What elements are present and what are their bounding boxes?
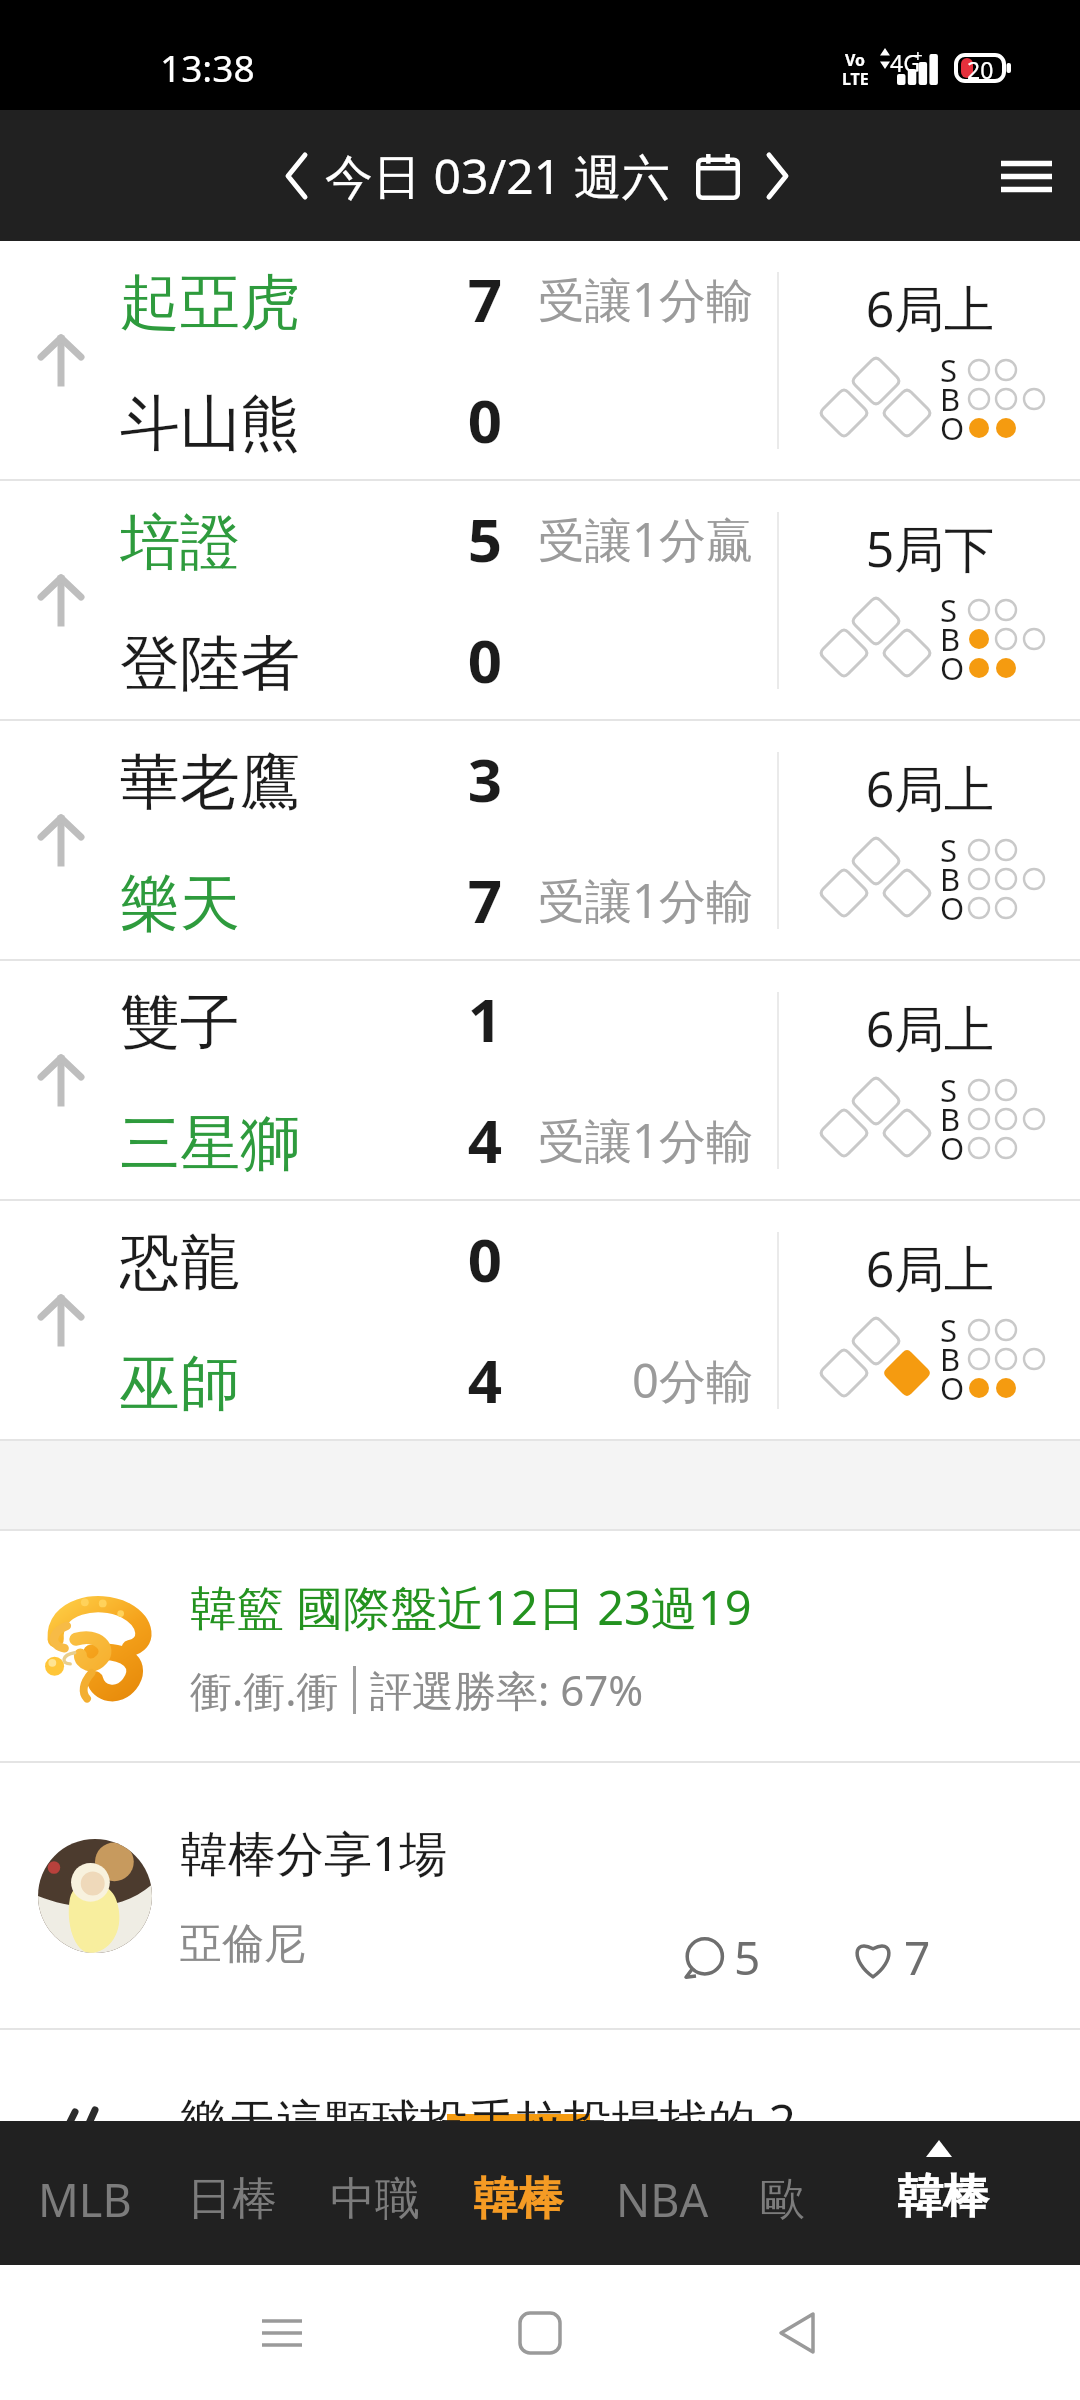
staticText: 韓籃 國際盤近12日 23過19	[190, 1575, 752, 1639]
button[interactable]: 韓棒	[448, 2121, 588, 2265]
button[interactable]: Home	[470, 2265, 610, 2400]
staticText: S	[940, 1309, 958, 1351]
staticText: 4	[440, 1339, 530, 1407]
staticText: 中職	[330, 2171, 420, 2228]
staticText: S	[940, 349, 958, 391]
button[interactable]: 培證	[0, 481, 1080, 719]
staticText: 今日 03/21 週六	[325, 143, 670, 209]
staticText: 歐	[760, 2171, 805, 2228]
staticText: 5局下	[810, 514, 1050, 582]
staticText: 0	[440, 619, 530, 687]
button[interactable]: 韓棒分享1場	[0, 1763, 1080, 2028]
staticText: O	[940, 647, 965, 689]
button[interactable]: NBA	[592, 2121, 732, 2265]
staticText: 斗山熊	[120, 386, 300, 454]
button[interactable]: Like	[850, 1926, 931, 1989]
staticText: 韓棒	[473, 2171, 563, 2228]
staticText: 樂天這顆球投手拉投場找的 2	[180, 2088, 796, 2154]
staticText: 6局上	[810, 994, 1050, 1062]
staticText: B	[940, 378, 961, 420]
staticText: O	[940, 1367, 965, 1409]
staticText: S	[940, 589, 958, 631]
button[interactable]: 日棒	[162, 2121, 302, 2265]
staticText: LTE	[842, 68, 869, 90]
staticText: 5	[734, 1926, 761, 1989]
staticText: O	[940, 1127, 965, 1169]
staticText: 日棒	[187, 2171, 277, 2228]
button[interactable]: MLB	[15, 2121, 155, 2265]
staticText: +	[913, 44, 923, 67]
staticText: 登陸者	[120, 626, 300, 694]
staticText: 起亞虎	[120, 265, 300, 333]
staticText: 4G	[890, 47, 920, 78]
staticText: B	[940, 1338, 961, 1380]
staticText: 受讓1分輸	[0, 1108, 753, 1172]
staticText: B	[940, 858, 961, 900]
button[interactable]: 樂天這顆球投手拉投場找的 2	[0, 2030, 1080, 2290]
button[interactable]: 起亞虎	[0, 241, 1080, 479]
staticText: 0	[440, 1218, 530, 1286]
staticText: 5	[440, 498, 530, 566]
staticText: 受讓1分輸	[0, 868, 753, 932]
button[interactable]: 華老鷹	[0, 721, 1080, 959]
staticText: Vo	[845, 49, 866, 71]
staticText: 三星獅	[120, 1106, 300, 1174]
staticText: 巫師	[120, 1346, 240, 1414]
staticText: 衝.衝.衝	[190, 1661, 339, 1718]
button[interactable]: 韓棒	[828, 2121, 1048, 2265]
staticText: 韓棒	[897, 2168, 989, 2226]
staticText: 0	[440, 379, 530, 447]
button[interactable]: Recents	[212, 2265, 352, 2400]
staticText: 1	[440, 978, 530, 1046]
staticText: 13:38	[160, 42, 255, 92]
staticText: 7	[440, 258, 530, 326]
staticText: 亞倫尼	[180, 1918, 306, 1971]
staticText: 0分輸	[0, 1348, 753, 1412]
staticText: B	[940, 1098, 961, 1140]
button[interactable]: 歐	[712, 2121, 852, 2265]
staticText: 4	[440, 1099, 530, 1167]
staticText: S	[940, 829, 958, 871]
staticText: 7	[904, 1926, 931, 1989]
staticText: 樂天	[120, 866, 240, 934]
staticText: NBA	[616, 2169, 709, 2230]
staticText: MLB	[38, 2169, 132, 2230]
button[interactable]: 今日 03/21 週六	[278, 110, 796, 241]
staticText: 雙子	[120, 985, 240, 1053]
staticText: 20	[967, 54, 994, 85]
staticText: 恐龍	[120, 1225, 240, 1293]
staticText: O	[940, 887, 965, 929]
button[interactable]: 中職	[305, 2121, 445, 2265]
staticText: 受讓1分輸	[0, 267, 753, 331]
button[interactable]: 雙子	[0, 961, 1080, 1199]
button[interactable]: Menu	[986, 136, 1066, 216]
staticText: 華老鷹	[120, 745, 300, 813]
button[interactable]: Back	[727, 2265, 867, 2400]
staticText: B	[940, 618, 961, 660]
staticText: 7	[440, 859, 530, 927]
staticText: 6局上	[810, 754, 1050, 822]
staticText: S	[940, 1069, 958, 1111]
staticText: 韓棒分享1場	[180, 1820, 448, 1886]
staticText: 6局上	[810, 1234, 1050, 1302]
staticText: 6局上	[810, 274, 1050, 342]
staticText: O	[940, 407, 965, 449]
button[interactable]: 恐龍	[0, 1201, 1080, 1439]
staticText: 受讓1分贏	[0, 507, 753, 571]
staticText: 評選勝率: 67%	[370, 1661, 644, 1718]
staticText: 培證	[120, 505, 240, 573]
button[interactable]: 韓籃 國際盤近12日 23過19	[0, 1531, 1080, 1761]
staticText: 3	[440, 738, 530, 806]
button[interactable]: Comments	[684, 1926, 761, 1989]
